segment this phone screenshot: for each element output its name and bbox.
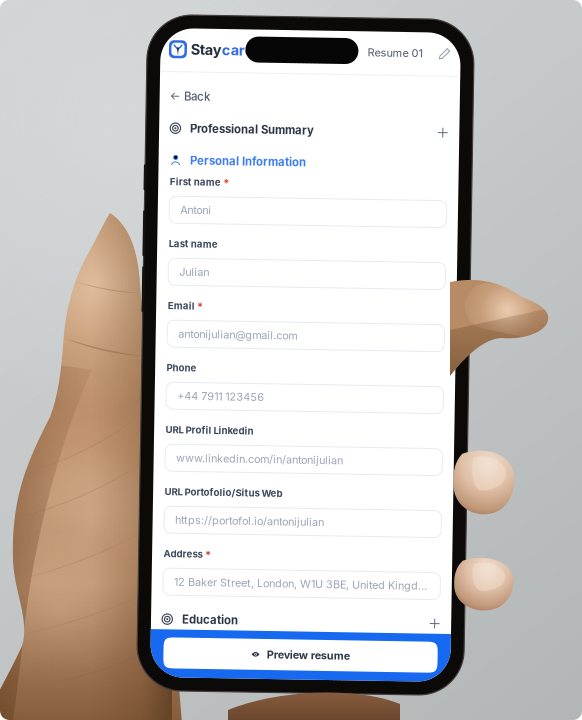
staticText: Email: [167, 302, 194, 314]
staticText: Back: [180, 91, 206, 105]
staticText: Education: [186, 615, 242, 628]
staticText: Last name: [167, 240, 216, 252]
staticText: Phone: [167, 364, 197, 376]
staticText: URL Profil Linkedin: [167, 426, 255, 438]
staticText: First name: [167, 178, 218, 190]
staticText: *: [208, 550, 214, 563]
button[interactable]: Preview resume: [168, 640, 443, 671]
button[interactable]: Personal Information: [155, 149, 456, 175]
staticText: Address: [167, 550, 206, 562]
staticText: Julian: [178, 267, 208, 280]
staticText: Personal Information: [187, 156, 303, 169]
staticText: *: [196, 302, 202, 315]
staticText: https://portofol.io/antonijulian: [178, 515, 327, 528]
staticText: antonijulian@gmail.com: [178, 329, 297, 342]
button[interactable]: Professional Summary: [155, 117, 456, 143]
staticText: Preview resume: [272, 649, 355, 662]
button[interactable]: Back: [155, 84, 456, 112]
staticText: URL Portofolio/Situs Web: [167, 488, 285, 500]
staticText: www.linkedin.com/in/antonijulian: [178, 453, 345, 466]
staticText: *: [220, 178, 226, 191]
staticText: career: [217, 43, 264, 60]
button[interactable]: Education: [155, 608, 456, 634]
staticText: Resume 01: [363, 45, 418, 58]
staticText: Professional Summary: [186, 124, 310, 137]
staticText: 12 Baker Street, London, W1U 3BE, United…: [178, 577, 431, 590]
staticText: Stay: [186, 43, 217, 60]
button[interactable]: Rename resume: [418, 39, 448, 63]
staticText: Antoni: [178, 205, 209, 218]
staticText: +44 7911 123456: [178, 391, 265, 404]
